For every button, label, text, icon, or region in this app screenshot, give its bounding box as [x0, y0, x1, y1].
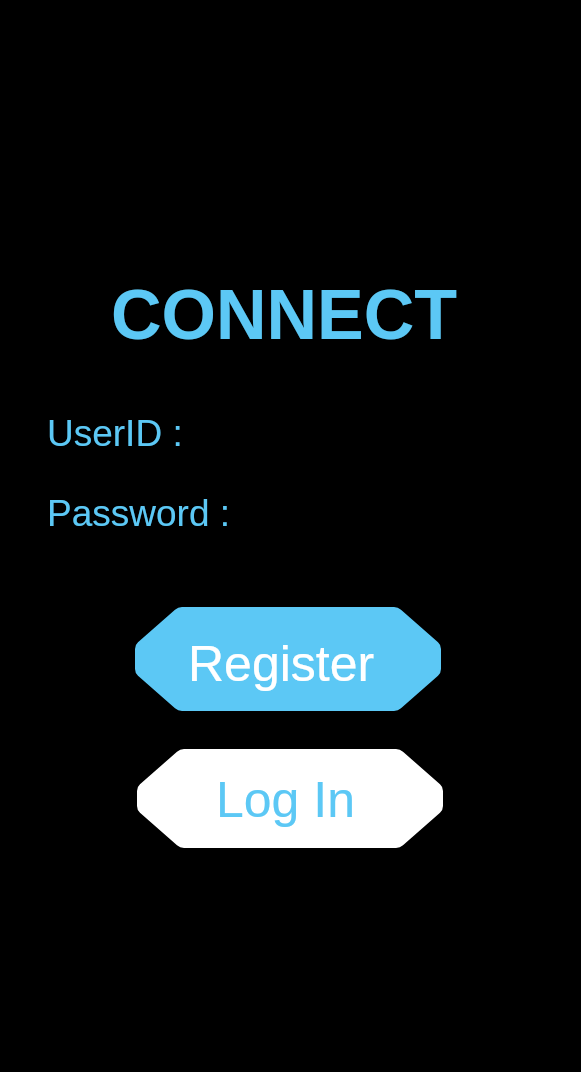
- staticText: CONNECT: [111, 276, 458, 354]
- staticText: UserID :: [47, 413, 183, 454]
- staticText: Log In: [216, 772, 356, 828]
- button[interactable]: Register: [135, 607, 441, 711]
- button[interactable]: Log In: [137, 749, 443, 848]
- staticText: Register: [188, 636, 375, 692]
- staticText: Password :: [47, 493, 231, 534]
